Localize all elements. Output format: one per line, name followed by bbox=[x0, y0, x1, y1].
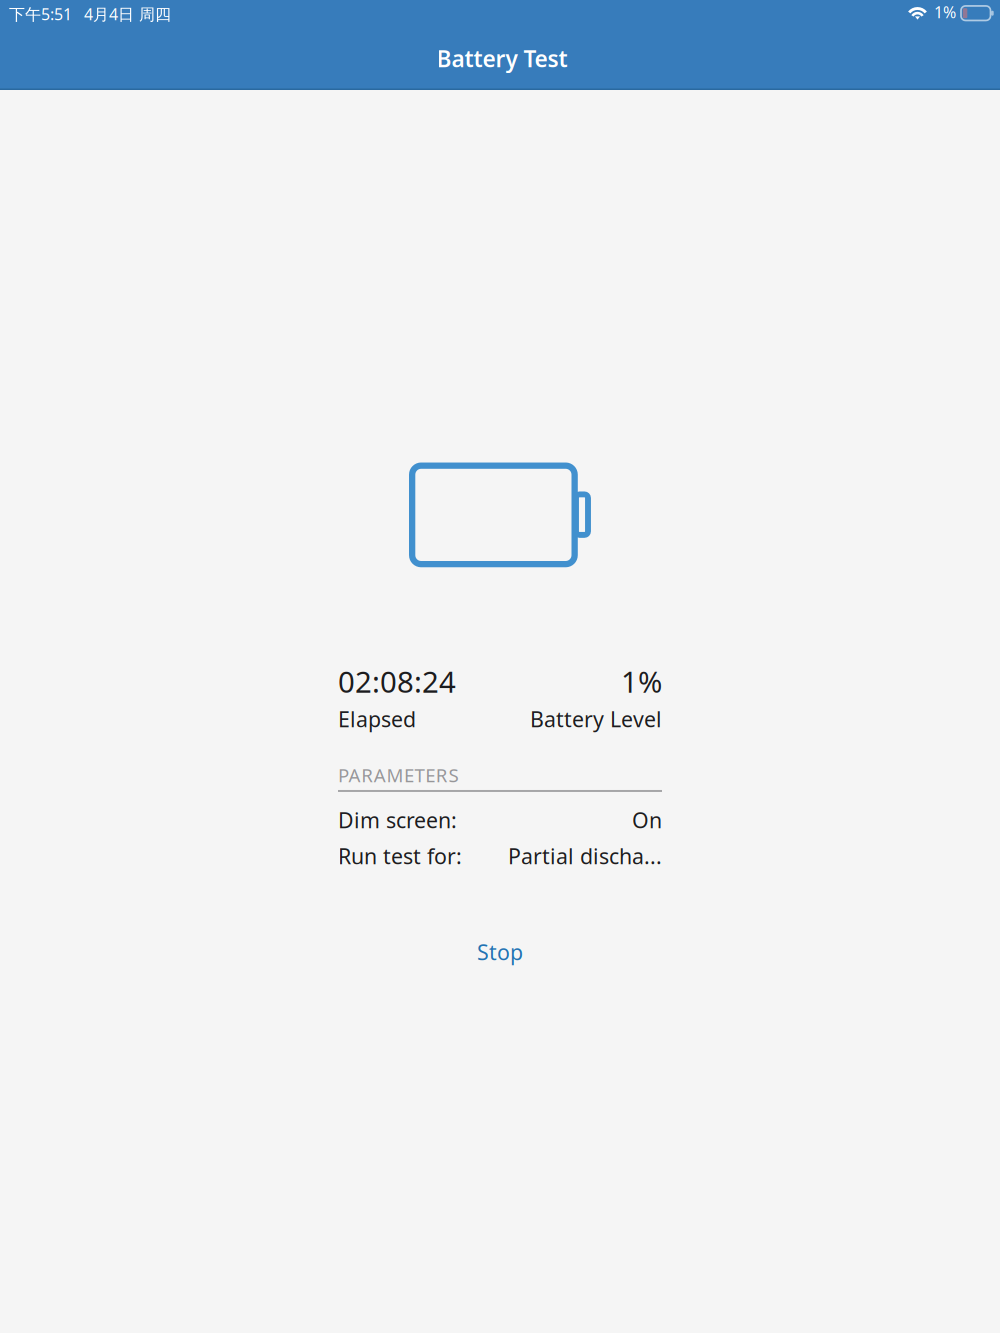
staticText: 02:08:24 bbox=[338, 662, 456, 701]
staticText: PARAMETERS bbox=[338, 763, 458, 787]
staticText: Battery Test bbox=[436, 43, 567, 73]
staticText: Battery Level bbox=[530, 705, 662, 733]
staticText: 下午5:51 4月4日 周四 bbox=[9, 3, 171, 25]
staticText: Partial discha... bbox=[508, 842, 662, 870]
staticText: 1% bbox=[934, 1, 956, 23]
button[interactable]: Stop bbox=[453, 928, 547, 976]
staticText: Stop bbox=[477, 938, 523, 966]
staticText: 1% bbox=[621, 662, 662, 701]
staticText: Dim screen: bbox=[338, 806, 457, 834]
staticText: Elapsed bbox=[338, 705, 416, 733]
staticText: Run test for: bbox=[338, 842, 462, 870]
staticText: On bbox=[632, 806, 662, 834]
